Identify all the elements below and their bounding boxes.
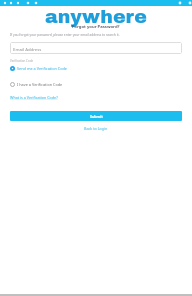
other: Status icons	[176, 1, 190, 5]
other: Notifications	[2, 1, 18, 5]
staticText: Send me a Verification Code	[17, 66, 67, 71]
staticText: Forgot your Password?	[72, 24, 120, 30]
staticText: Email Address	[13, 46, 42, 52]
button[interactable]: Send me a Verification Code	[10, 66, 67, 71]
staticText: Back to Login	[84, 126, 108, 131]
staticText: Submit	[90, 114, 103, 119]
staticText: Verification Code	[10, 59, 34, 63]
button[interactable]: Email Address	[10, 42, 182, 54]
staticText: I have a Verification Code	[17, 82, 63, 87]
button[interactable]: What is a Verification Code?	[10, 95, 58, 100]
staticText: What is a Verification Code?	[10, 95, 58, 100]
button[interactable]: I have a Verification Code	[10, 82, 63, 87]
staticText: anywhere	[45, 6, 147, 27]
staticText: If you forgot your password, please ente…	[10, 33, 120, 37]
button[interactable]: Submit	[10, 111, 182, 121]
button[interactable]: Back to Login	[84, 126, 108, 131]
